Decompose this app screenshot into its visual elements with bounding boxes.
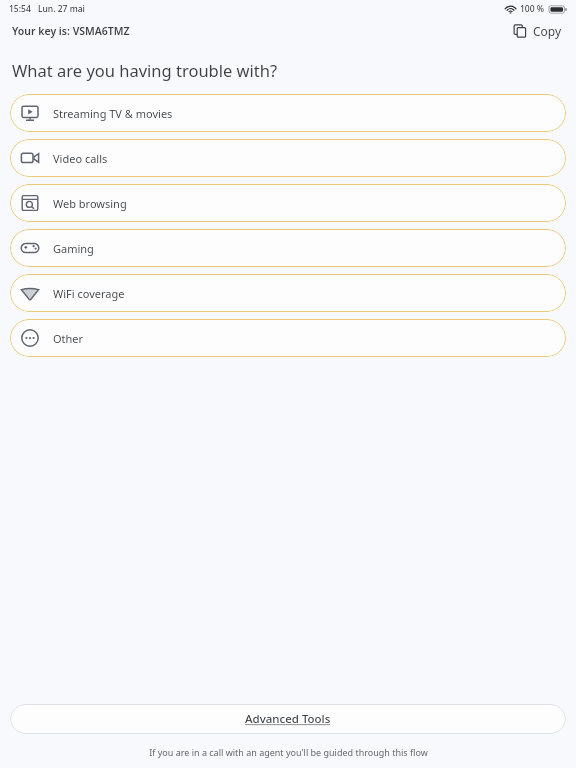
button[interactable]: Web browsing [10, 184, 566, 222]
staticText: 15:54 [9, 3, 31, 15]
button[interactable]: Copy key [509, 20, 566, 42]
staticText: Other [53, 331, 84, 346]
staticText: Advanced Tools [245, 711, 331, 727]
staticText: What are you having trouble with? [12, 59, 278, 81]
staticText: 100 % [520, 3, 545, 15]
button[interactable]: Gaming [10, 229, 566, 267]
staticText: Gaming [53, 241, 94, 256]
staticText: Streaming TV & movies [53, 106, 173, 121]
button[interactable]: Video calls [10, 139, 566, 177]
staticText: Video calls [53, 151, 108, 166]
button[interactable]: Other [10, 319, 566, 357]
button[interactable]: WiFi coverage [10, 274, 566, 312]
other: Copy key [513, 24, 527, 38]
staticText: Copy [533, 23, 562, 39]
staticText: WiFi coverage [53, 286, 125, 301]
staticText: If you are in a call with an agent you'l… [149, 746, 428, 758]
staticText: Lun. 27 mai [38, 3, 85, 15]
button[interactable]: Streaming TV & movies [10, 94, 566, 132]
staticText: Web browsing [53, 196, 127, 211]
button[interactable]: Advanced Tools [10, 704, 566, 734]
staticText: Your key is: VSMA6TMZ [12, 24, 130, 38]
